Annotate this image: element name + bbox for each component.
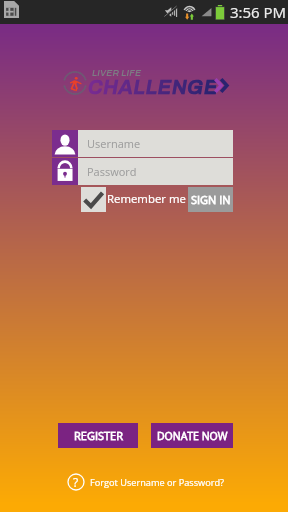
button[interactable]: ? [67,473,225,491]
staticText: 3:56 PM [230,2,287,22]
button[interactable]: Username [52,130,233,157]
staticText: CHALLENGE [88,76,219,98]
button[interactable]: SIGN IN [188,187,233,212]
staticText: REGISTER [74,428,123,443]
other: Silent mode [164,6,178,18]
other: SIM card [4,1,19,18]
other: Wi-Fi [183,4,196,20]
staticText: Forgot Username or Password? [90,476,225,489]
button[interactable]: REGISTER [58,423,138,448]
staticText: SIGN IN [191,192,231,207]
staticText: Username [87,136,141,151]
staticText: DONATE NOW [157,429,228,443]
staticText: Password [87,164,137,179]
button[interactable]: DONATE NOW [151,423,233,448]
button[interactable]: Remember me checkbox [81,187,106,212]
button[interactable]: Password [52,158,233,185]
staticText: Remember me [107,191,186,207]
staticText: ? [73,474,79,490]
staticText: LIVER LIFE [92,68,142,78]
